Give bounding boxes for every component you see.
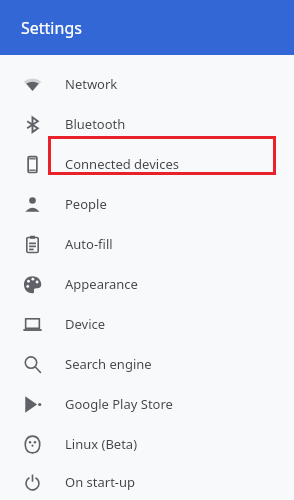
staticText: Network	[65, 75, 118, 93]
button[interactable]: Auto-fill	[0, 224, 294, 264]
staticText: Connected devices	[65, 155, 179, 173]
staticText: Settings	[21, 17, 82, 39]
staticText: Auto-fill	[65, 235, 113, 253]
button[interactable]: Linux (Beta)	[0, 424, 294, 464]
staticText: Search engine	[65, 355, 152, 373]
button[interactable]: People	[0, 184, 294, 224]
button[interactable]: Connected devices	[0, 144, 294, 184]
button[interactable]: Google Play Store	[0, 384, 294, 424]
button[interactable]: Network	[0, 64, 294, 104]
button[interactable]: Bluetooth	[0, 104, 294, 144]
staticText: Device	[65, 315, 106, 333]
staticText: Google Play Store	[65, 395, 173, 413]
staticText: People	[65, 195, 107, 213]
staticText: On start-up	[65, 473, 136, 491]
staticText: Appearance	[65, 275, 138, 293]
staticText: Bluetooth	[65, 115, 126, 133]
button[interactable]: On start-up	[0, 464, 294, 500]
button[interactable]: Search engine	[0, 344, 294, 384]
staticText: Linux (Beta)	[65, 435, 138, 453]
button[interactable]: Appearance	[0, 264, 294, 304]
button[interactable]: Device	[0, 304, 294, 344]
